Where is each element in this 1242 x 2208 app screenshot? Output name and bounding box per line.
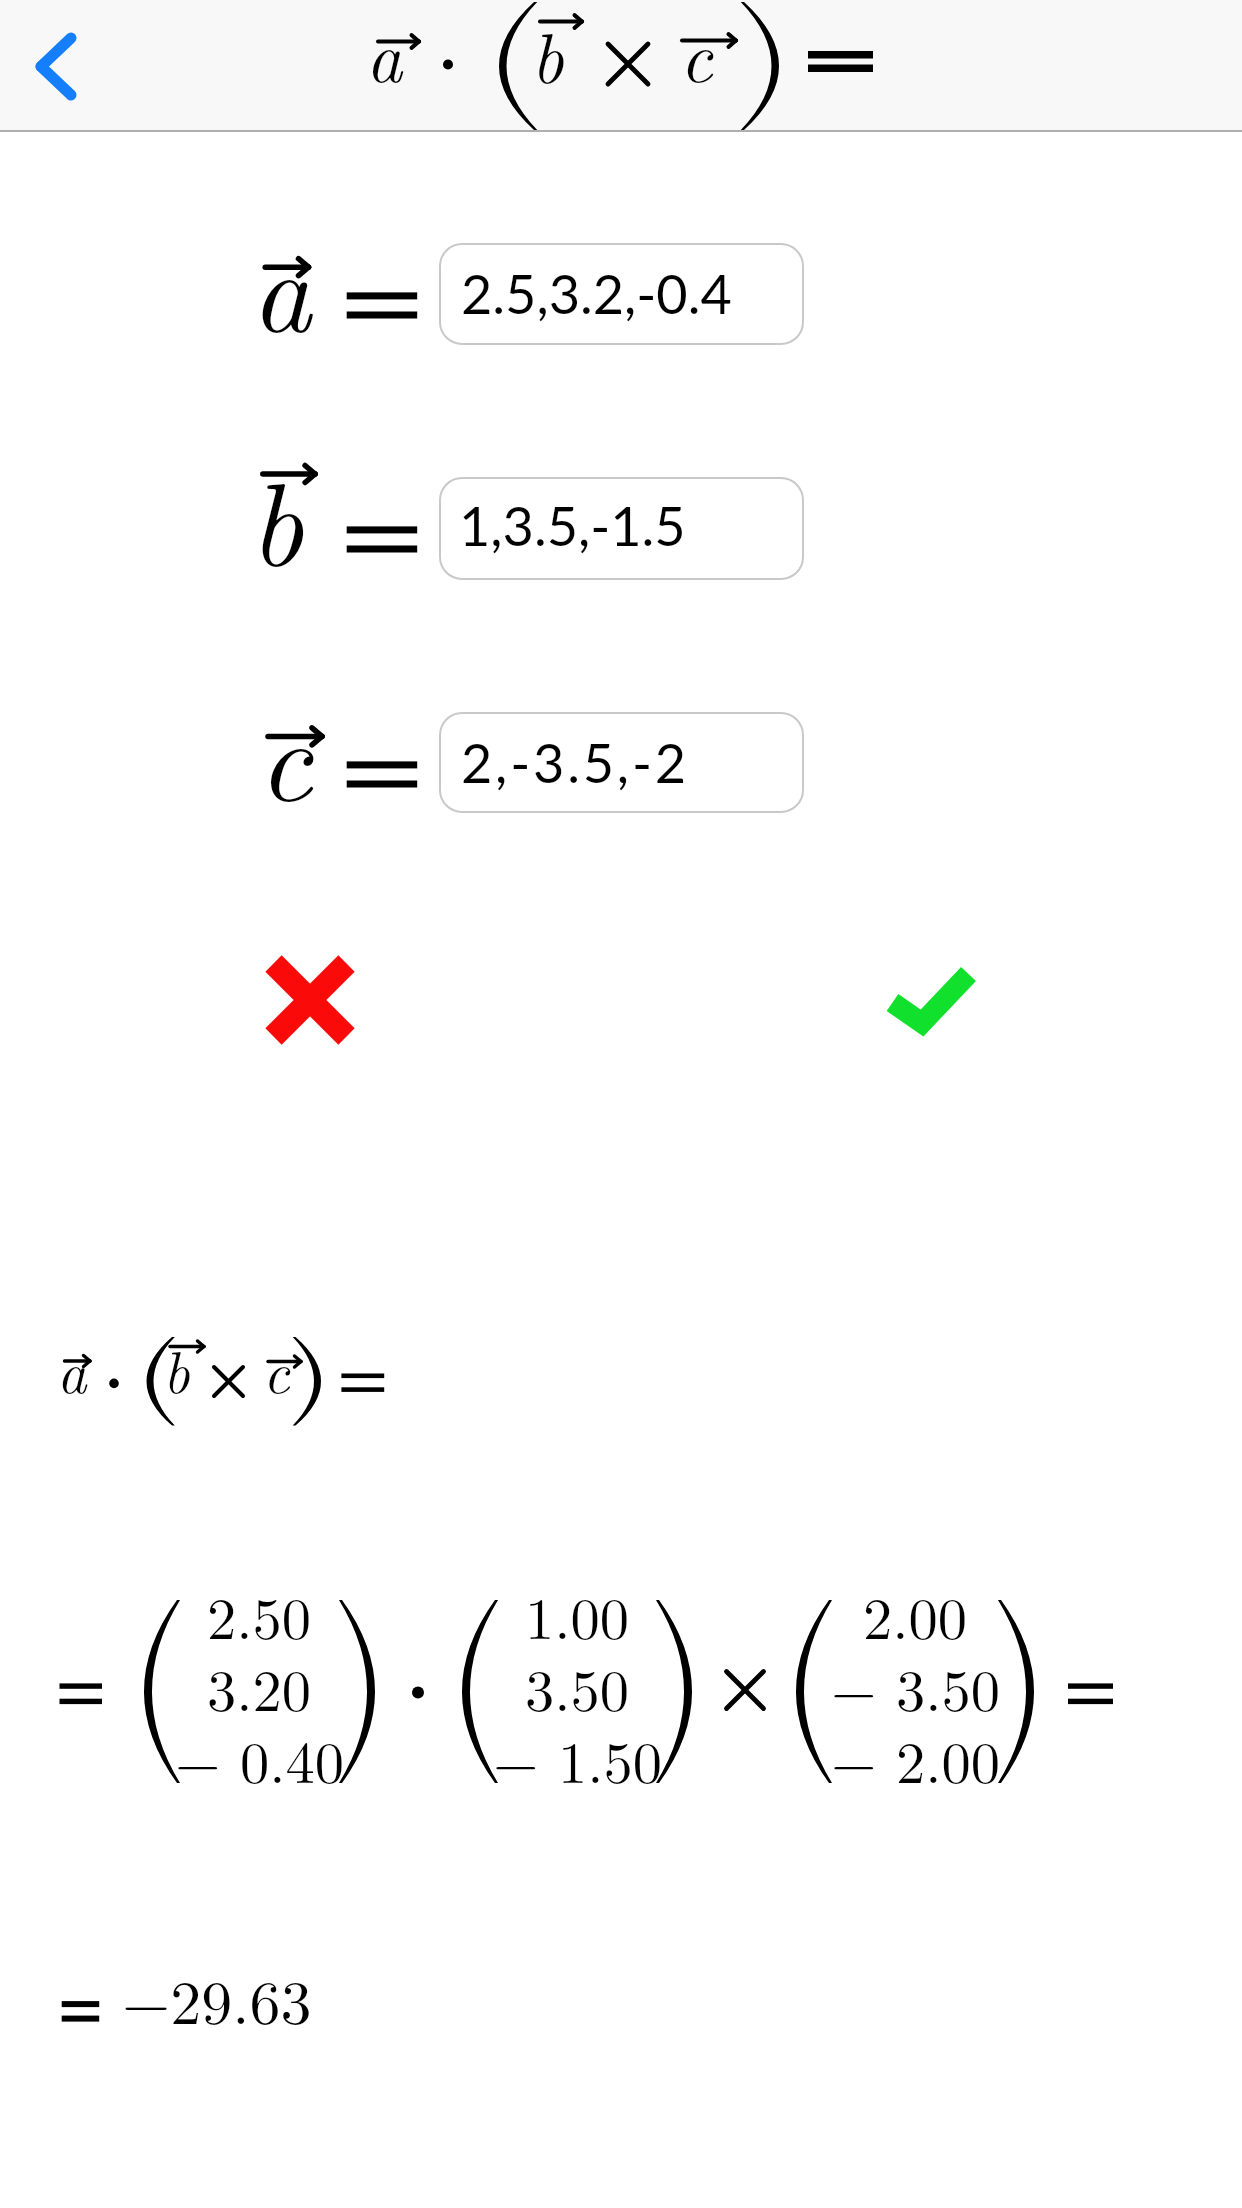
staticText: c <box>263 1328 290 1410</box>
staticText: 3.50 <box>525 1645 630 1728</box>
button[interactable] <box>876 945 986 1055</box>
staticText: − 0.40 <box>175 1717 345 1800</box>
staticText: b <box>531 3 564 103</box>
staticText: 3.20 <box>207 1645 312 1728</box>
staticText: b <box>249 433 304 600</box>
staticText: a <box>57 1328 87 1410</box>
staticText: 2.00 <box>863 1573 968 1656</box>
staticText: 2.5,3.2,-0.4 <box>461 261 732 326</box>
button[interactable] <box>439 243 804 345</box>
button[interactable] <box>255 945 365 1055</box>
staticText: 1.00 <box>525 1573 630 1656</box>
staticText: 2,-3.5,-2 <box>461 730 689 795</box>
staticText: a <box>251 199 312 366</box>
staticText: − 1.50 <box>493 1717 663 1800</box>
staticText: 2.50 <box>207 1573 312 1656</box>
staticText: 1,3.5,-1.5 <box>459 493 686 558</box>
staticText: c <box>258 668 313 835</box>
button[interactable] <box>439 477 804 580</box>
staticText: c <box>680 2 713 102</box>
staticText: a <box>366 2 403 102</box>
button[interactable] <box>20 20 100 115</box>
staticText: − 3.50 <box>831 1645 1001 1728</box>
button[interactable] <box>439 712 804 813</box>
staticText: b <box>163 1328 190 1410</box>
staticText: −29.63 <box>122 1954 312 2042</box>
staticText: − 2.00 <box>831 1717 1001 1800</box>
